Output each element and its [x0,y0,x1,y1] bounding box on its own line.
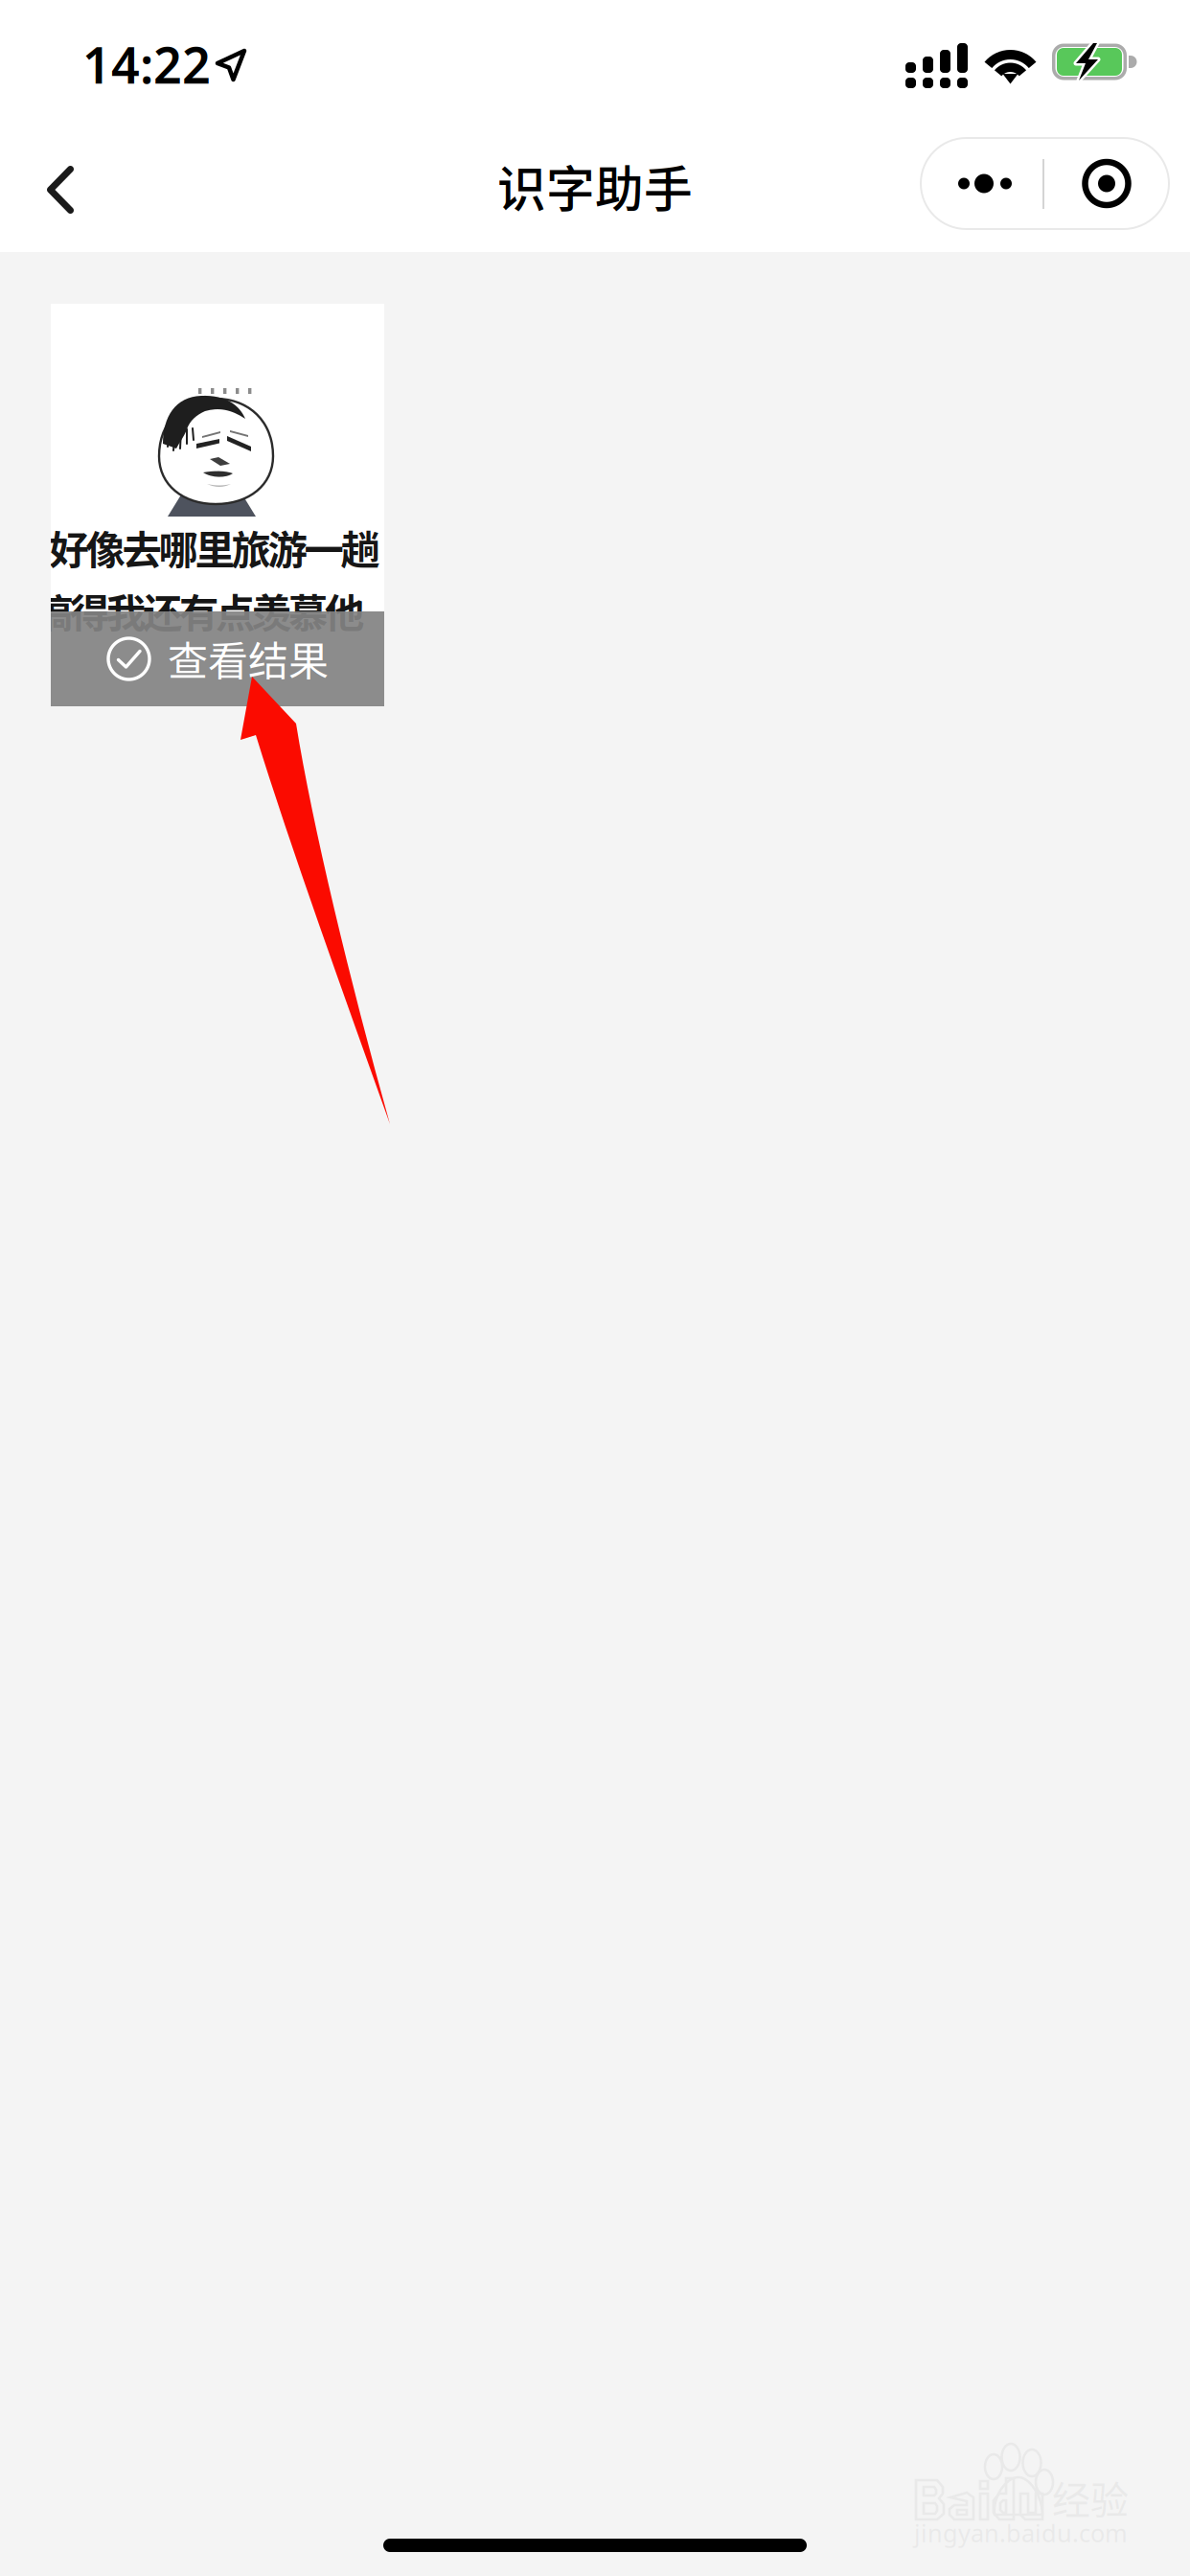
button[interactable]: Close mini program [921,138,1046,229]
staticText: jingyan.baidu.com [914,2517,1128,2549]
staticText: 搞得我还有点羡慕他 [34,582,364,639]
button[interactable]: Back [0,0,105,105]
button[interactable]: 刚好像去哪里旅游一趟 [51,304,384,706]
staticText: 识字助手 [497,151,693,221]
staticText: 14:22 [82,31,211,97]
button[interactable]: More options [921,138,1043,229]
staticText: 刚好像去哪里旅游一趟 [13,519,380,576]
staticText: 查看结果 [168,629,329,688]
staticText: 经验 [1052,2470,1129,2525]
